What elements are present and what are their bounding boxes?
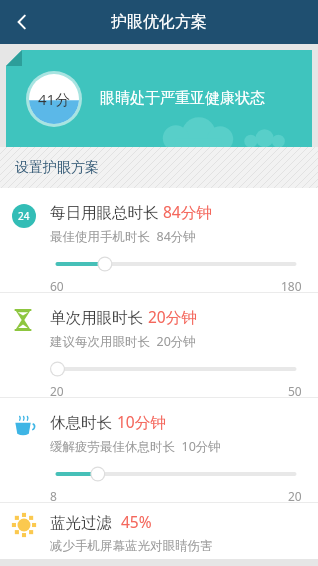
staticText: 最佳使用手机时长 84分钟	[50, 228, 196, 245]
button[interactable]: 蓝光过滤	[0, 503, 318, 559]
staticText: 60	[50, 278, 64, 292]
button[interactable]: 休息时长	[0, 398, 318, 502]
staticText: 眼睛处于严重亚健康状态	[100, 89, 265, 108]
staticText: 缓解疲劳最佳休息时长 10分钟	[50, 438, 221, 455]
button[interactable]: Slider	[50, 360, 302, 378]
staticText: 180	[281, 278, 302, 292]
staticText: 41分	[38, 89, 71, 109]
staticText: 10分钟	[117, 411, 166, 432]
staticText: 蓝光过滤	[50, 511, 121, 532]
staticText: 设置护眼方案	[15, 159, 99, 177]
staticText: 20	[288, 488, 302, 502]
button[interactable]: Back	[0, 0, 44, 44]
staticText: 8	[50, 488, 57, 502]
button[interactable]: 单次用眼时长	[0, 293, 318, 397]
button[interactable]: 24	[0, 188, 318, 292]
staticText: 护眼优化方案	[111, 12, 207, 32]
button[interactable]: Slider	[50, 465, 302, 483]
staticText: 84分钟	[163, 201, 212, 222]
staticText: 每日用眼总时长	[50, 201, 163, 222]
staticText: 单次用眼时长	[50, 306, 148, 327]
staticText: 减少手机屏幕蓝光对眼睛伤害	[50, 538, 213, 554]
staticText: 建议每次用眼时长 20分钟	[50, 333, 196, 350]
staticText: 24	[18, 209, 30, 223]
staticText: 20	[50, 383, 64, 397]
staticText: 45%	[121, 511, 152, 532]
staticText: 20分钟	[148, 306, 197, 327]
button[interactable]: Slider	[50, 255, 302, 273]
staticText: 50	[288, 383, 302, 397]
staticText: 休息时长	[50, 411, 117, 432]
